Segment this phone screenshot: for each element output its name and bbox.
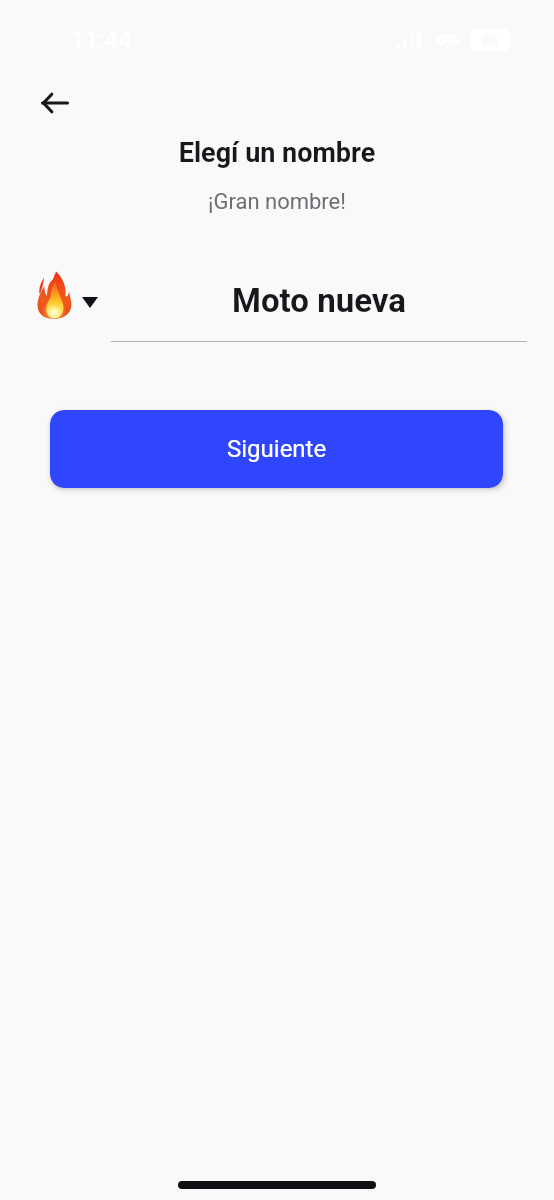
button[interactable]: Moto nueva <box>111 272 527 342</box>
staticText: ¡Gran nombre! <box>0 189 554 215</box>
button[interactable]: Back <box>26 74 83 131</box>
button[interactable]: Choose emoji <box>26 261 107 328</box>
button[interactable]: Siguiente <box>50 410 503 488</box>
staticText: Moto nueva <box>111 281 527 320</box>
staticText: Elegí un nombre <box>0 137 554 169</box>
staticText: Siguiente <box>227 435 327 463</box>
